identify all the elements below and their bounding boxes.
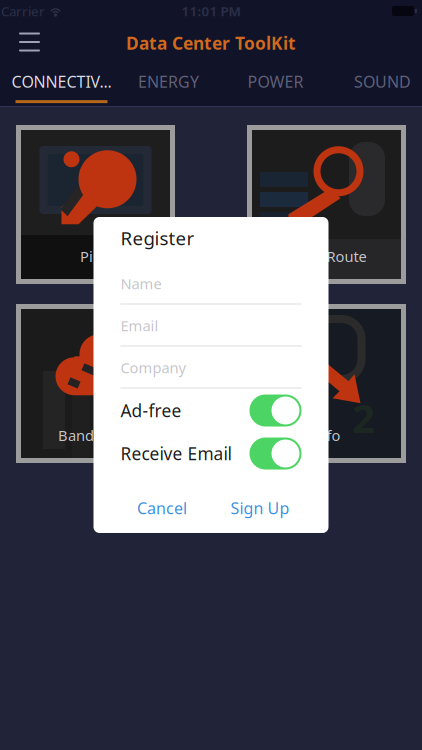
staticText: 11:01 PM: [181, 2, 240, 20]
button[interactable]: CONNECTIV...: [8, 64, 115, 107]
staticText: 2: [352, 391, 375, 444]
staticText: SOUND: [354, 71, 411, 92]
button[interactable]: POWER: [222, 64, 329, 107]
staticText: Receive Email: [120, 442, 231, 465]
staticText: Register: [120, 226, 194, 250]
staticText: Name: [120, 274, 161, 293]
staticText: Bandwidth: [58, 425, 133, 445]
staticText: Cancel: [137, 497, 187, 519]
button[interactable]: SOUND: [329, 64, 422, 107]
button[interactable]: Cancel: [117, 486, 207, 530]
staticText: CONNECTIV...: [11, 71, 111, 92]
button[interactable]: ENERGY: [115, 64, 222, 107]
button[interactable]: Ad-free: [249, 394, 301, 426]
staticText: Trace Route: [286, 246, 366, 266]
button[interactable]: Receive Email: [249, 437, 301, 469]
button[interactable]: Sign Up: [215, 486, 305, 530]
button[interactable]: Bandwidth: [16, 304, 175, 463]
button[interactable]: Ping: [16, 125, 175, 284]
staticText: Data Center ToolKit: [126, 31, 296, 54]
staticText: Carrier: [1, 2, 45, 20]
staticText: ENERGY: [138, 71, 199, 92]
button[interactable]: 2: [247, 304, 406, 463]
staticText: POWER: [247, 71, 303, 92]
staticText: Sign Up: [230, 497, 289, 519]
button[interactable]: Menu: [0, 22, 62, 64]
staticText: Email: [120, 316, 158, 335]
staticText: Company: [120, 358, 185, 377]
staticText: Info: [312, 425, 340, 445]
button[interactable]: Trace Route: [247, 125, 406, 284]
staticText: Ad-free: [120, 399, 181, 422]
staticText: Ping: [80, 246, 111, 266]
